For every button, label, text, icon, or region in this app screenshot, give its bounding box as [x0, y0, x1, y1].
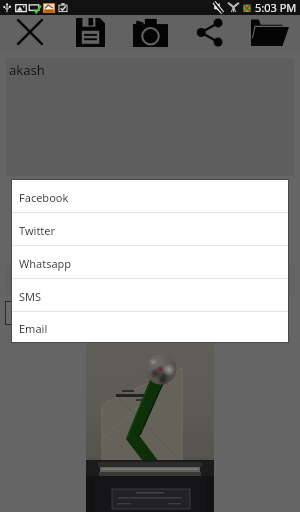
button[interactable]: Facebook — [12, 180, 288, 212]
button[interactable]: Close — [6, 15, 54, 53]
staticText: SMS — [19, 289, 42, 304]
button[interactable]: Open folder — [246, 15, 294, 53]
staticText: Facebook — [19, 190, 69, 205]
button[interactable]: Share — [186, 15, 234, 53]
staticText: Whatsapp — [19, 256, 72, 271]
button[interactable]: Save — [66, 15, 114, 53]
button[interactable]: Email — [12, 312, 288, 342]
button[interactable]: SMS — [12, 279, 288, 311]
staticText: 5:03 PM — [255, 0, 297, 15]
staticText: akash — [9, 61, 45, 79]
button[interactable]: Camera — [126, 15, 174, 53]
button[interactable]: Whatsapp — [12, 246, 288, 278]
button[interactable]: Twitter — [12, 213, 288, 245]
staticText: Twitter — [19, 223, 56, 238]
staticText: Share — [30, 306, 60, 321]
button[interactable]: Share — [5, 301, 85, 325]
staticText: Email — [19, 321, 48, 336]
